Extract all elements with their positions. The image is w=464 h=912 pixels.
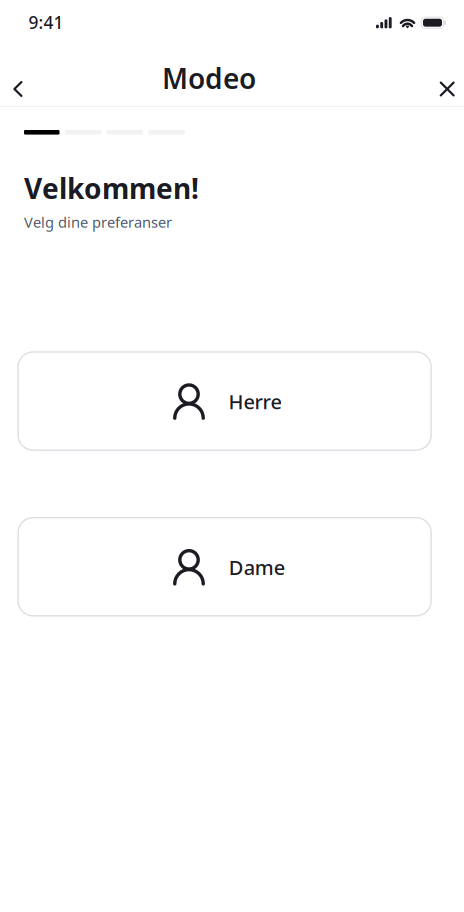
- staticText: 9:41: [28, 11, 63, 34]
- staticText: Velg dine preferanser: [24, 212, 172, 232]
- button[interactable]: Herre: [17, 351, 432, 451]
- staticText: Dame: [229, 554, 285, 580]
- button[interactable]: Close: [424, 67, 464, 111]
- staticText: Velkommen!: [24, 170, 199, 207]
- staticText: Herre: [229, 388, 282, 415]
- button[interactable]: Back: [0, 67, 40, 111]
- button[interactable]: Dame: [17, 517, 432, 617]
- staticText: Modeo: [162, 60, 256, 97]
